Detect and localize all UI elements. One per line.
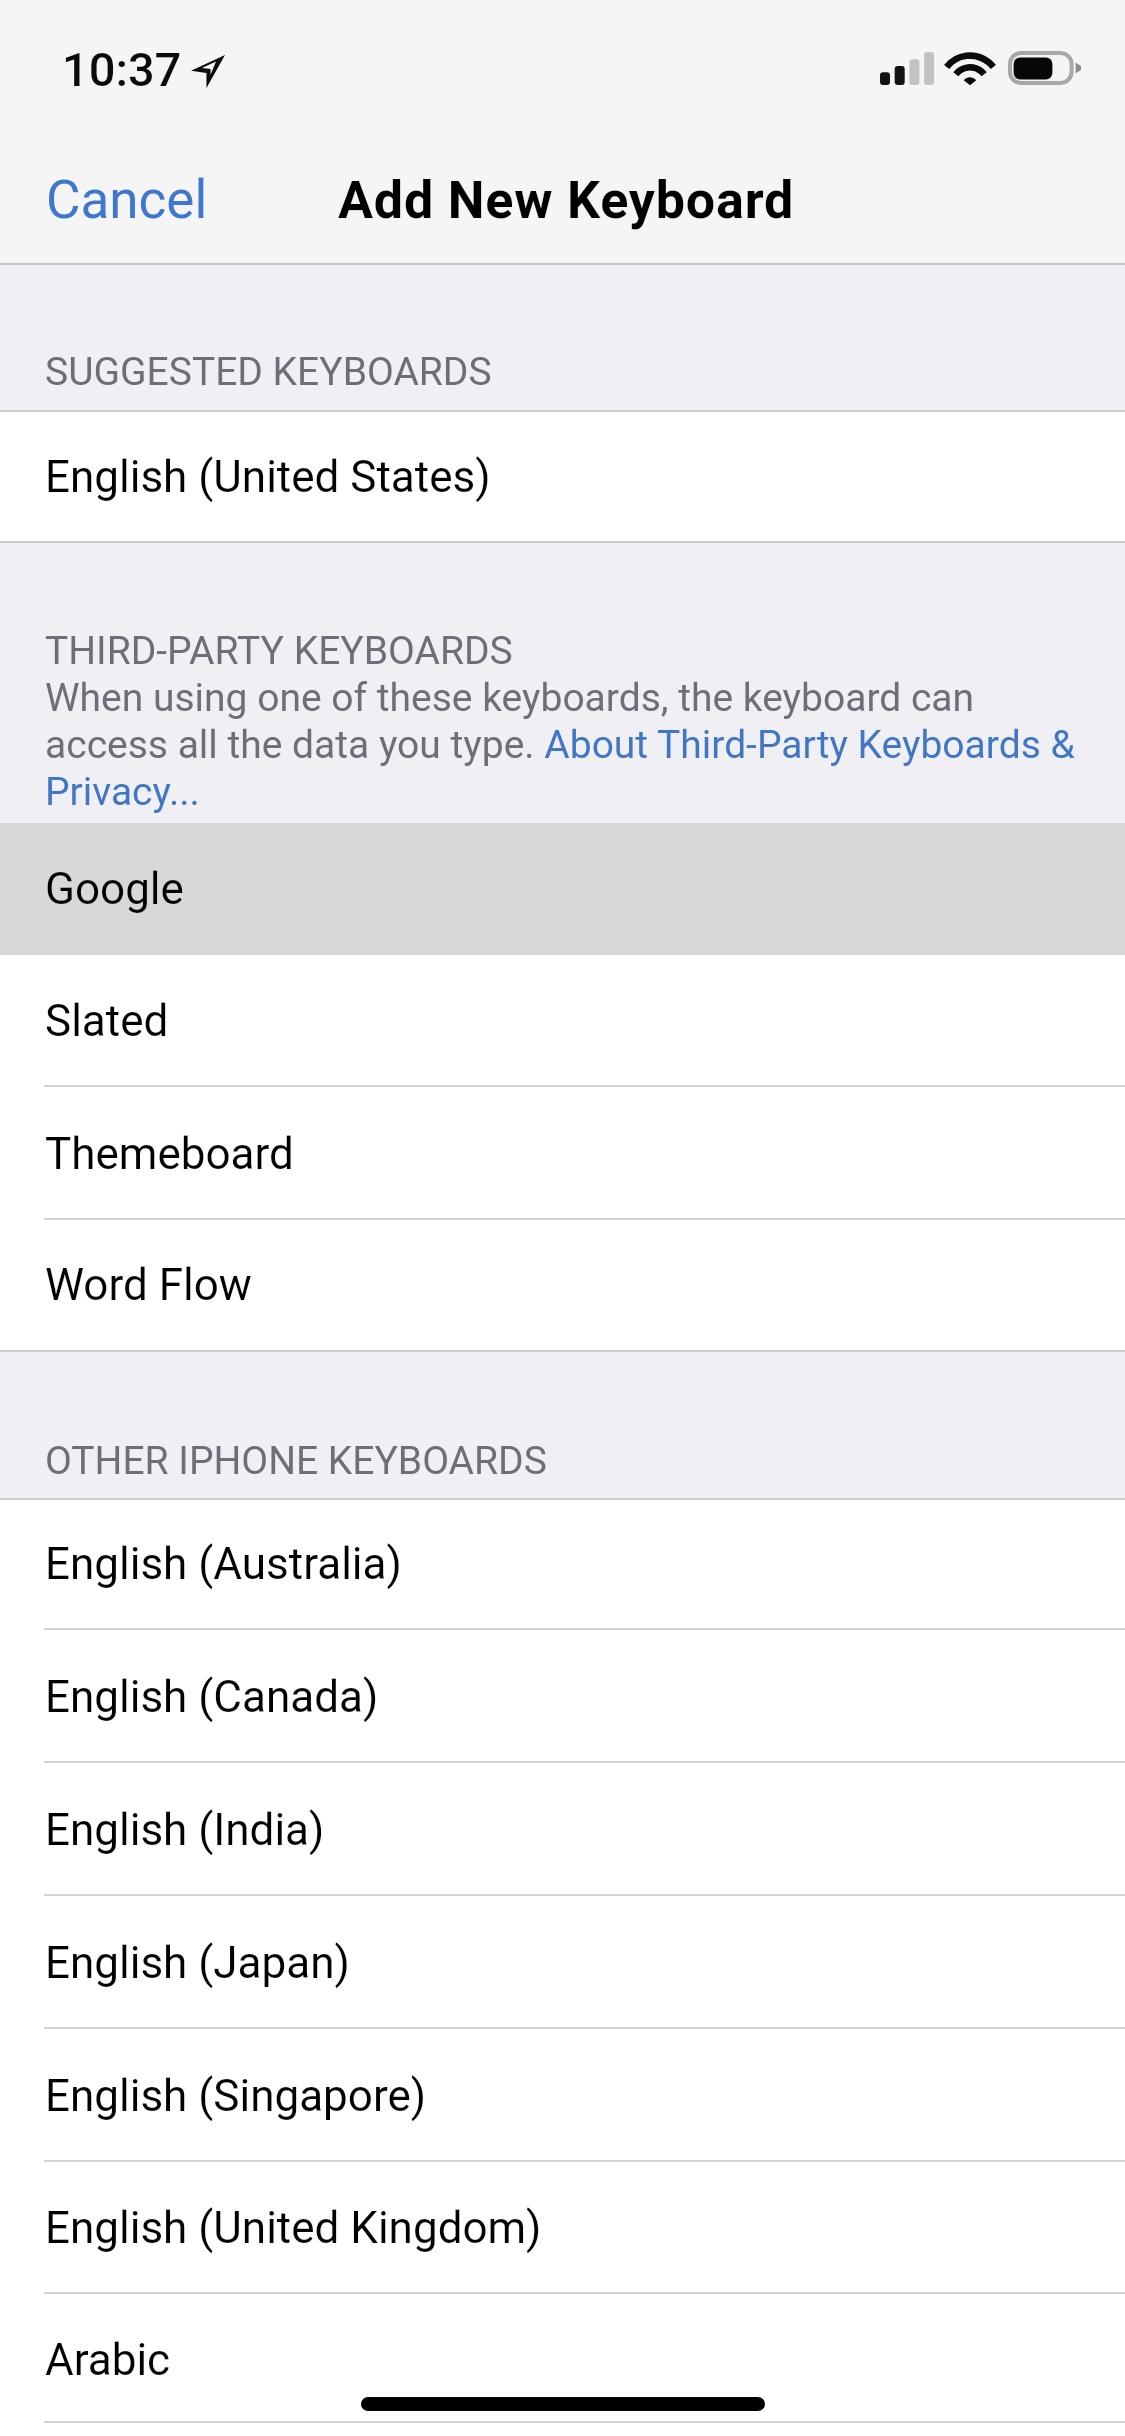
staticText: English (India) [45, 1804, 325, 1856]
staticText: English (Singapore) [45, 2070, 427, 2122]
button[interactable]: Cancel [0, 153, 232, 247]
button[interactable]: English (United States) [0, 411, 1125, 542]
staticText: English (Japan) [45, 1937, 350, 1989]
staticText: Slated [45, 995, 169, 1047]
button[interactable]: Word Flow [0, 1220, 1125, 1350]
staticText: OTHER IPHONE KEYBOARDS [45, 1438, 547, 1484]
other: Location [191, 55, 225, 88]
staticText: English (Canada) [45, 1671, 379, 1723]
staticText: Google [45, 863, 184, 915]
staticText: Cancel [46, 169, 208, 231]
button[interactable]: English (Japan) [0, 1896, 1125, 2029]
staticText: THIRD-PARTY KEYBOARDS When using one of … [45, 628, 1080, 815]
staticText: Themeboard [45, 1128, 294, 1180]
staticText: 10:37 [62, 42, 182, 97]
button[interactable]: Arabic [0, 2294, 1125, 2426]
button[interactable]: English (Singapore) [0, 2029, 1125, 2162]
staticText: English (United States) [45, 451, 491, 503]
button[interactable]: English (Australia) [0, 1498, 1125, 1630]
button[interactable]: English (United Kingdom) [0, 2162, 1125, 2294]
button[interactable]: Slated [0, 955, 1125, 1087]
button[interactable]: English (India) [0, 1763, 1125, 1896]
staticText: SUGGESTED KEYBOARDS [45, 349, 492, 395]
button[interactable]: English (Canada) [0, 1630, 1125, 1763]
staticText: Word Flow [45, 1259, 252, 1311]
staticText: English (Australia) [45, 1538, 402, 1590]
staticText: Arabic [45, 2334, 171, 2386]
staticText: Add New Keyboard [338, 170, 795, 231]
staticText: English (United Kingdom) [45, 2202, 542, 2254]
button[interactable]: Google [0, 823, 1125, 955]
button[interactable]: Themeboard [0, 1087, 1125, 1220]
